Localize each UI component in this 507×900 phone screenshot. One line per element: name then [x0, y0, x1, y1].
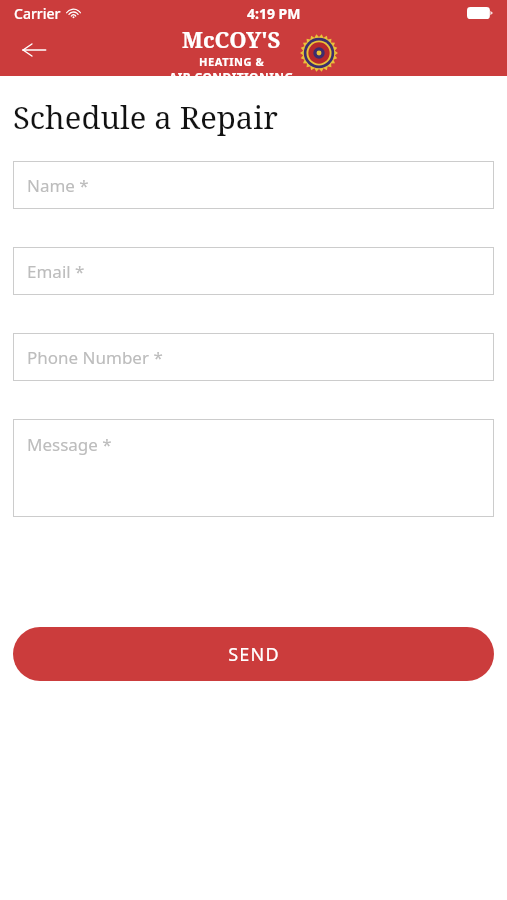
staticText: Schedule a Repair — [13, 96, 278, 138]
staticText: SEND — [228, 642, 280, 667]
button[interactable]: Back — [14, 30, 54, 70]
staticText: Message * — [27, 433, 112, 456]
button[interactable]: Name * — [13, 161, 494, 209]
staticText: 4:19 PM — [247, 4, 301, 23]
staticText: Carrier — [14, 4, 61, 23]
button[interactable]: Email * — [13, 247, 494, 295]
button[interactable]: Message * — [13, 419, 494, 517]
button[interactable]: SEND — [13, 627, 494, 681]
button[interactable]: Phone Number * — [13, 333, 494, 381]
staticText: Name * — [27, 174, 89, 197]
staticText: McCOY'S — [182, 24, 281, 54]
staticText: AIR CONDITIONING — [169, 69, 294, 85]
staticText: Phone Number * — [27, 346, 163, 369]
staticText: Email * — [27, 260, 85, 283]
staticText: HEATING & — [199, 54, 265, 69]
